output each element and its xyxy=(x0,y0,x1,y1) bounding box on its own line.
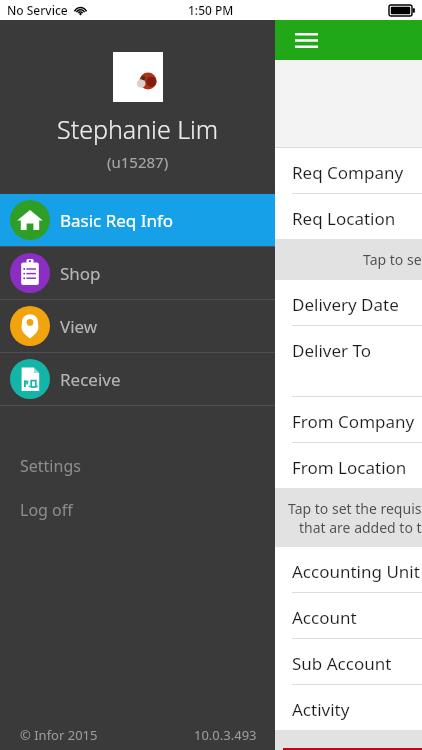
staticText: Delivery Date xyxy=(292,293,399,316)
staticText: Basic Req Info xyxy=(60,209,174,232)
button[interactable]: From Company xyxy=(275,397,422,442)
button[interactable]: From Location xyxy=(275,443,422,488)
staticText: Tap to se xyxy=(363,250,422,269)
button[interactable]: Req Location xyxy=(275,194,422,239)
staticText: Sub Account xyxy=(292,652,392,675)
button[interactable]: Delivery Date xyxy=(275,280,422,325)
staticText: Req Company xyxy=(292,161,404,184)
staticText: Req Location xyxy=(292,207,396,230)
button[interactable]: Log off xyxy=(0,498,275,522)
button[interactable]: Settings xyxy=(0,454,275,478)
staticText: Log off xyxy=(20,499,73,521)
button[interactable]: Activity xyxy=(275,685,422,730)
button[interactable]: Accounting Unit xyxy=(275,547,422,592)
staticText: Deliver To xyxy=(292,339,371,362)
staticText: From Location xyxy=(292,456,407,479)
staticText: Tap to set the requis xyxy=(288,499,422,518)
staticText: Activity xyxy=(292,698,350,721)
staticText: © Infor 2015 xyxy=(20,726,98,744)
button[interactable]: Receive xyxy=(0,353,275,405)
staticText: that are added to t xyxy=(299,518,422,537)
staticText: Shop xyxy=(60,262,101,285)
staticText: Account xyxy=(292,606,357,629)
staticText: 10.0.3.493 xyxy=(194,726,257,744)
staticText: Stephanie Lim xyxy=(57,112,219,146)
button[interactable]: Open navigation menu xyxy=(291,28,321,52)
staticText: (u15287) xyxy=(107,152,169,172)
button[interactable]: Account xyxy=(275,593,422,638)
button[interactable]: Sub Account xyxy=(275,639,422,684)
staticText: 1:50 PM xyxy=(188,2,234,18)
staticText: Settings xyxy=(20,455,81,477)
staticText: From Company xyxy=(292,410,415,433)
button[interactable]: Shop xyxy=(0,247,275,299)
button[interactable]: View xyxy=(0,300,275,352)
button[interactable]: Basic Req Info xyxy=(0,194,275,246)
staticText: View xyxy=(60,315,98,338)
staticText: Receive xyxy=(60,368,121,391)
button[interactable]: Req Company xyxy=(275,148,422,193)
button[interactable]: Deliver To xyxy=(275,326,422,396)
staticText: Accounting Unit xyxy=(292,560,420,583)
staticText: No Service xyxy=(7,2,68,18)
